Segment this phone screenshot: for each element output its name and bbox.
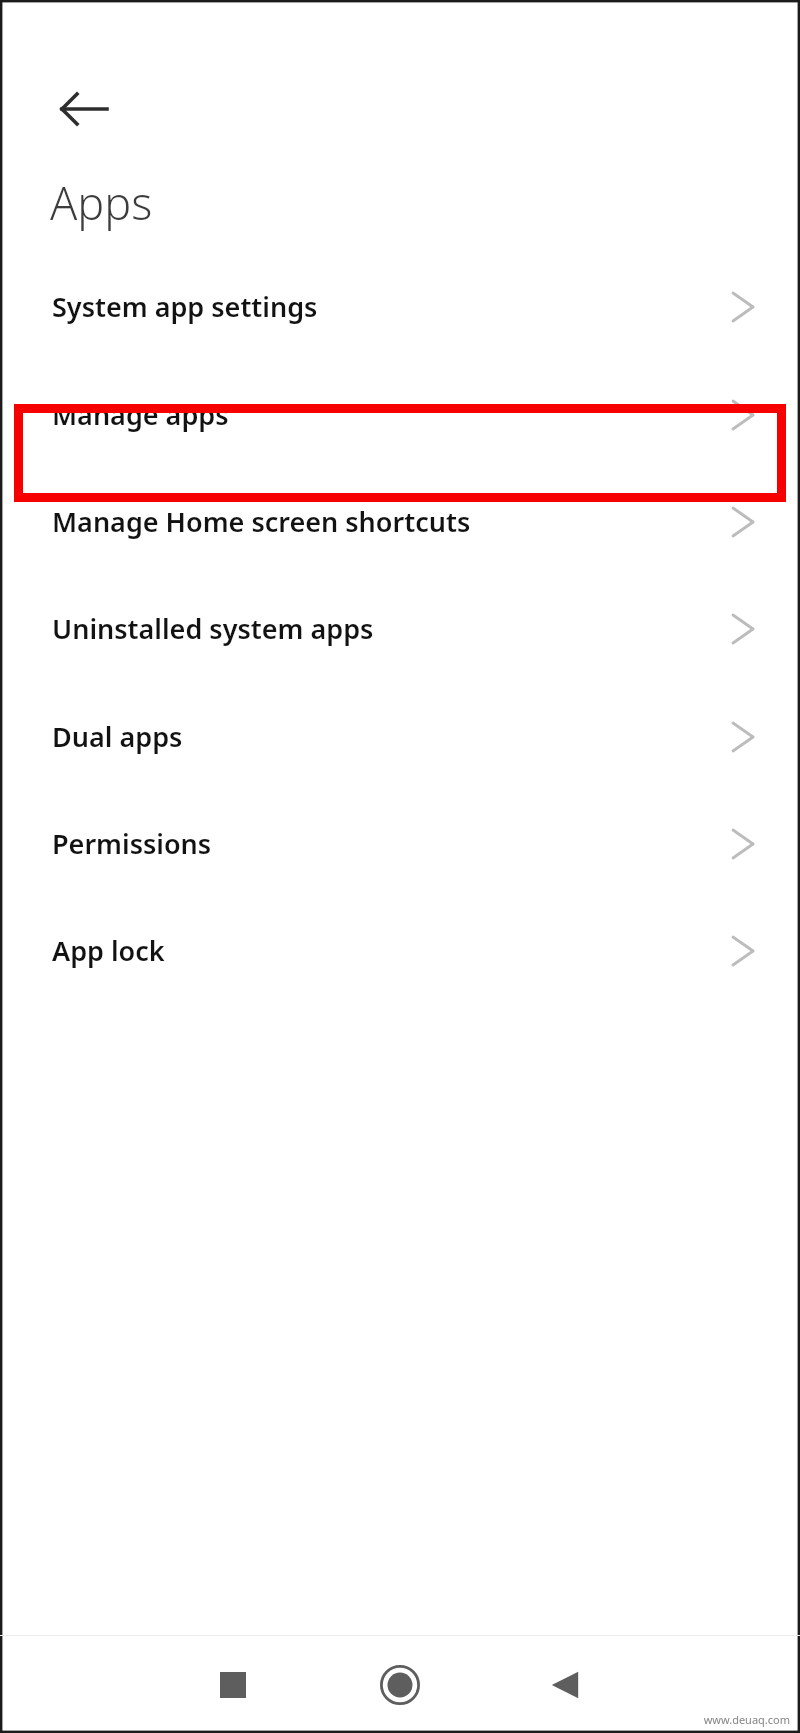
staticText: Permissions (52, 825, 212, 862)
button[interactable]: Home (355, 1649, 445, 1721)
button[interactable]: Recent apps (188, 1649, 278, 1721)
staticText: System app settings (52, 288, 318, 325)
button[interactable]: Dual apps (0, 683, 800, 790)
button[interactable]: Back (40, 78, 110, 140)
button[interactable]: Uninstalled system apps (0, 575, 800, 682)
button[interactable]: App lock (0, 897, 800, 1004)
staticText: Manage apps (52, 396, 229, 433)
staticText: Dual apps (52, 718, 183, 755)
button[interactable]: System app settings (0, 253, 800, 360)
button[interactable]: Back (520, 1649, 610, 1721)
staticText: Apps (50, 172, 153, 233)
button[interactable]: Manage Home screen shortcuts (0, 468, 800, 575)
staticText: App lock (52, 932, 165, 969)
staticText: Manage Home screen shortcuts (52, 503, 471, 540)
button[interactable]: Permissions (0, 790, 800, 897)
button[interactable]: Manage apps (0, 361, 800, 468)
staticText: Uninstalled system apps (52, 610, 374, 647)
staticText: www.deuaq.com (703, 1712, 790, 1727)
